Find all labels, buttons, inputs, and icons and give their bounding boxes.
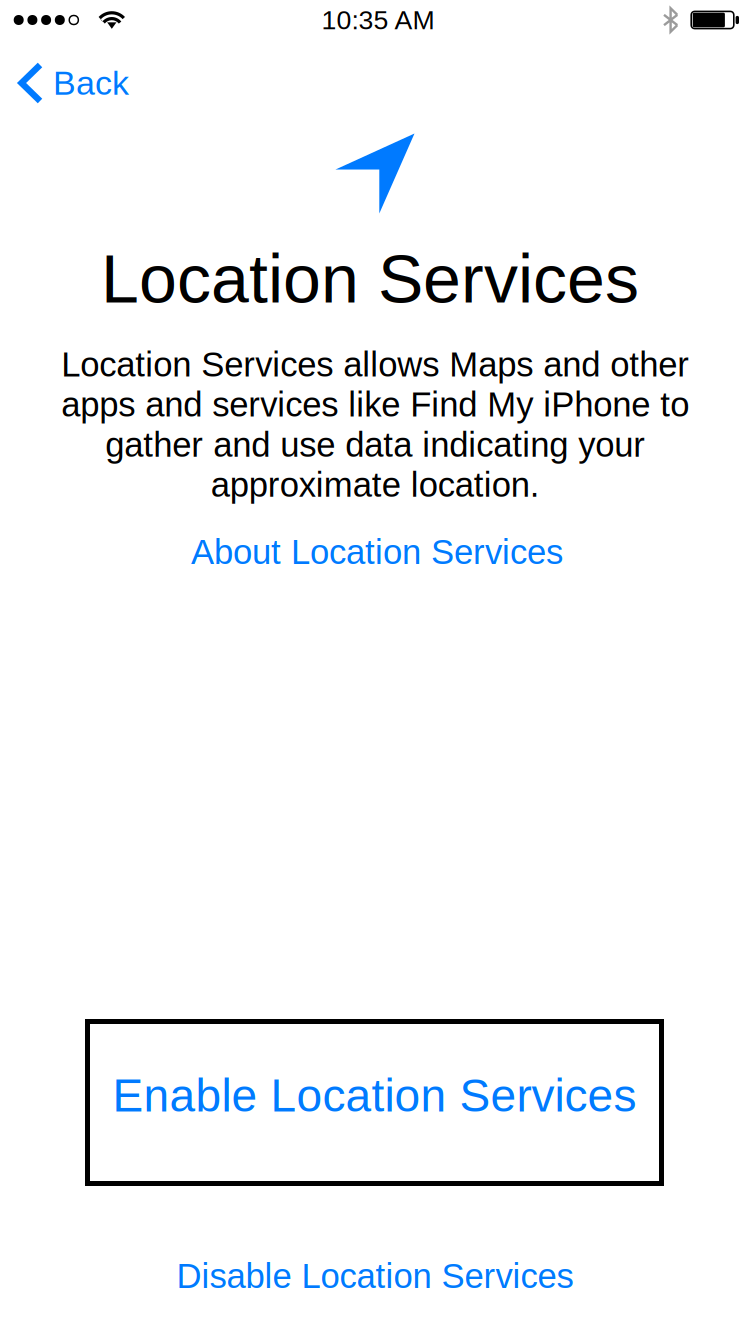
staticText: Disable Location Services bbox=[176, 1257, 573, 1295]
button[interactable]: Back bbox=[0, 52, 141, 114]
staticText: Location Services bbox=[101, 241, 639, 317]
button[interactable]: Disable Location Services bbox=[155, 1252, 595, 1300]
staticText: About Location Services bbox=[191, 533, 563, 571]
staticText: 10:35 AM bbox=[321, 5, 434, 35]
staticText: Enable Location Services bbox=[112, 1070, 636, 1121]
staticText: Back bbox=[53, 64, 129, 102]
button[interactable]: About Location Services bbox=[167, 528, 587, 576]
staticText: Location Services allows Maps and other … bbox=[61, 345, 689, 504]
button[interactable]: Enable Location Services bbox=[85, 1019, 664, 1186]
